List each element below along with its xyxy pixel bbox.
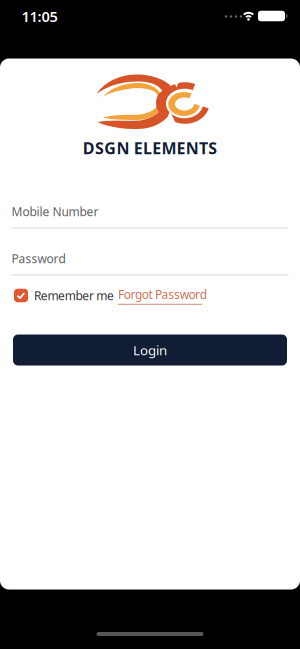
button[interactable]: Forgot Password [118,286,207,305]
staticText: Login [133,341,167,359]
button[interactable]: Mobile Number [11,203,288,228]
staticText: Mobile Number [11,203,98,219]
button[interactable]: Password [11,250,288,275]
button[interactable]: Remember me [14,287,114,303]
staticText: Password [11,250,65,266]
button[interactable]: Login [13,334,287,365]
staticText: Forgot Password [118,286,207,302]
staticText: 11:05 [21,6,57,26]
staticText: DSGN ELEMENTS [83,137,217,159]
staticText: Remember me [34,287,114,303]
